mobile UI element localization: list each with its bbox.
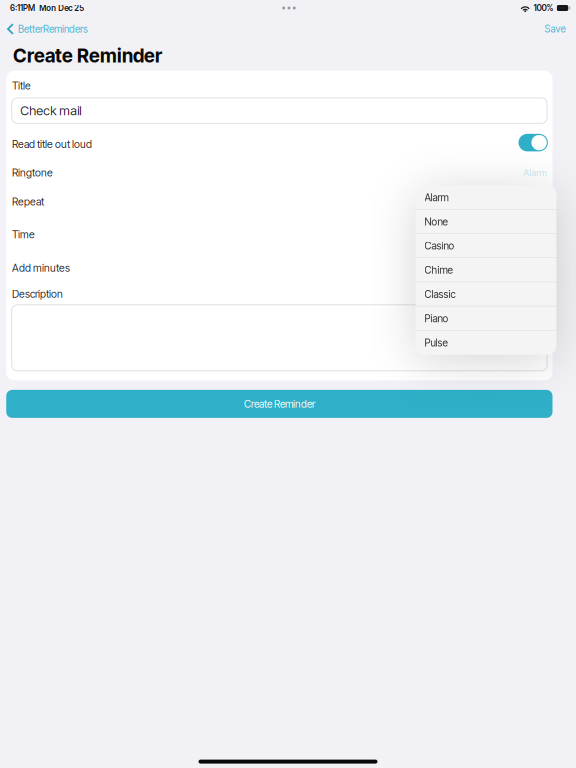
- button[interactable]: Pulse: [416, 331, 556, 355]
- staticText: Create Reminder: [13, 44, 162, 67]
- staticText: Casino: [425, 240, 455, 252]
- button[interactable]: Ringtone: [6, 158, 552, 186]
- staticText: Alarm: [425, 191, 449, 204]
- staticText: Description: [12, 288, 63, 300]
- staticText: Repeat: [12, 195, 44, 208]
- staticText: Alarm: [523, 167, 547, 178]
- button[interactable]: Casino: [416, 234, 556, 258]
- button[interactable]: Time: [6, 217, 552, 250]
- staticText: Check mail: [20, 103, 81, 118]
- staticText: Save: [544, 23, 565, 35]
- button[interactable]: Create Reminder: [6, 390, 552, 418]
- button[interactable]: Read title out loud: [6, 123, 552, 158]
- staticText: 6:11PM: [10, 3, 35, 13]
- staticText: Piano: [425, 312, 449, 325]
- button[interactable]: Add minutes: [6, 250, 552, 281]
- staticText: BetterReminders: [18, 23, 88, 35]
- staticText: Title: [12, 79, 31, 92]
- button[interactable]: BetterReminders: [0, 18, 94, 40]
- staticText: Time: [12, 228, 35, 241]
- button[interactable]: None: [416, 210, 556, 234]
- button[interactable]: Repeat: [6, 186, 552, 217]
- staticText: Chime: [425, 264, 453, 276]
- button[interactable]: Classic: [416, 282, 556, 306]
- staticText: Add minutes: [12, 262, 70, 274]
- staticText: 100%: [533, 3, 553, 13]
- button[interactable]: Alarm: [416, 185, 556, 210]
- button[interactable]: Save: [536, 18, 576, 40]
- button[interactable]: Piano: [416, 306, 556, 331]
- staticText: Read title out loud: [12, 138, 92, 150]
- staticText: Mon Dec 25: [39, 3, 84, 13]
- staticText: None: [425, 216, 448, 228]
- staticText: Classic: [425, 288, 456, 300]
- staticText: Pulse: [425, 337, 448, 349]
- button[interactable]: Chime: [416, 258, 556, 282]
- staticText: Ringtone: [12, 166, 53, 179]
- staticText: Create Reminder: [244, 398, 315, 410]
- button[interactable]: Description: [6, 280, 552, 305]
